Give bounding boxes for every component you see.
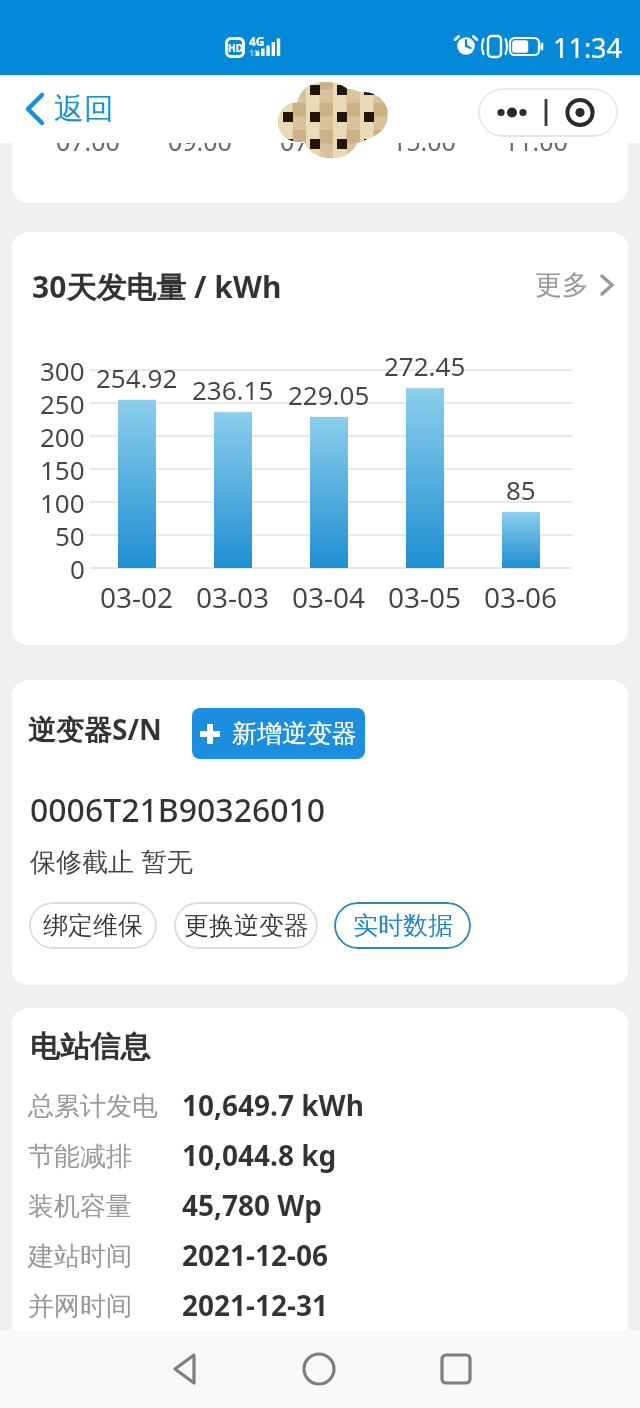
staticText: 保修截止 暂无	[30, 843, 193, 879]
staticText: 更换逆变器	[184, 910, 309, 941]
staticText: 绑定维保	[43, 910, 143, 941]
staticText: 4G	[249, 33, 265, 49]
staticText: 09:00	[168, 143, 232, 158]
staticText: 100	[40, 485, 85, 519]
staticText: 200	[40, 419, 85, 453]
staticText: 返回	[54, 90, 114, 128]
staticText: 30天发电量 / kWh	[32, 266, 282, 307]
button[interactable]: 更换逆变器	[174, 902, 318, 949]
staticText: 254.92	[96, 360, 178, 394]
staticText: 电站信息	[30, 1028, 150, 1066]
staticText: 更多	[535, 268, 589, 302]
staticText: 03-02	[100, 578, 174, 614]
staticText: 0006T21B90326010	[30, 788, 326, 832]
staticText: 272.45	[384, 348, 466, 382]
button[interactable]: 返回	[22, 75, 114, 143]
button[interactable]: 绑定维保	[29, 902, 157, 949]
staticText: 11:00	[504, 143, 568, 158]
staticText: 03-05	[388, 578, 462, 614]
button[interactable]	[478, 88, 618, 137]
staticText: 15	[249, 46, 260, 58]
staticText: 逆变器S/N	[28, 710, 162, 748]
staticText: 0	[70, 551, 85, 585]
staticText: 2021-12-06	[182, 1236, 329, 1274]
staticText: 装机容量	[28, 1190, 132, 1223]
staticText: 11:34	[553, 29, 623, 66]
staticText: 150	[40, 452, 85, 486]
staticText: 10,649.7 kWh	[182, 1086, 364, 1124]
staticText: 03-06	[484, 578, 558, 614]
staticText: 03-04	[292, 578, 366, 614]
staticText: 250	[40, 386, 85, 420]
button[interactable]	[426, 1339, 486, 1399]
button[interactable]: 新增逆变器	[192, 708, 365, 759]
staticText: HD	[228, 41, 243, 55]
staticText: 并网时间	[28, 1290, 132, 1323]
staticText: 实时数据	[353, 910, 453, 941]
staticText: 50	[55, 518, 85, 552]
staticText: 建站时间	[28, 1240, 132, 1273]
staticText: 85	[506, 472, 536, 506]
button[interactable]	[289, 1339, 349, 1399]
button[interactable]: 实时数据	[334, 902, 471, 949]
staticText: 229.05	[288, 377, 370, 411]
staticText: 2021-12-31	[182, 1286, 329, 1324]
staticText: 45,780 Wp	[182, 1186, 322, 1224]
staticText: 236.15	[192, 372, 274, 406]
button[interactable]	[155, 1339, 215, 1399]
staticText: 总累计发电	[28, 1090, 158, 1123]
staticText: 10,044.8 kg	[182, 1136, 337, 1174]
staticText: 节能减排	[28, 1140, 132, 1173]
staticText: 300	[40, 353, 85, 387]
staticText: 07:00	[56, 143, 120, 158]
staticText: 07:00	[280, 143, 344, 158]
staticText: 新增逆变器	[232, 718, 357, 749]
staticText: 15:00	[392, 143, 456, 158]
staticText: 03-03	[196, 578, 270, 614]
button[interactable]: 更多	[535, 268, 615, 302]
